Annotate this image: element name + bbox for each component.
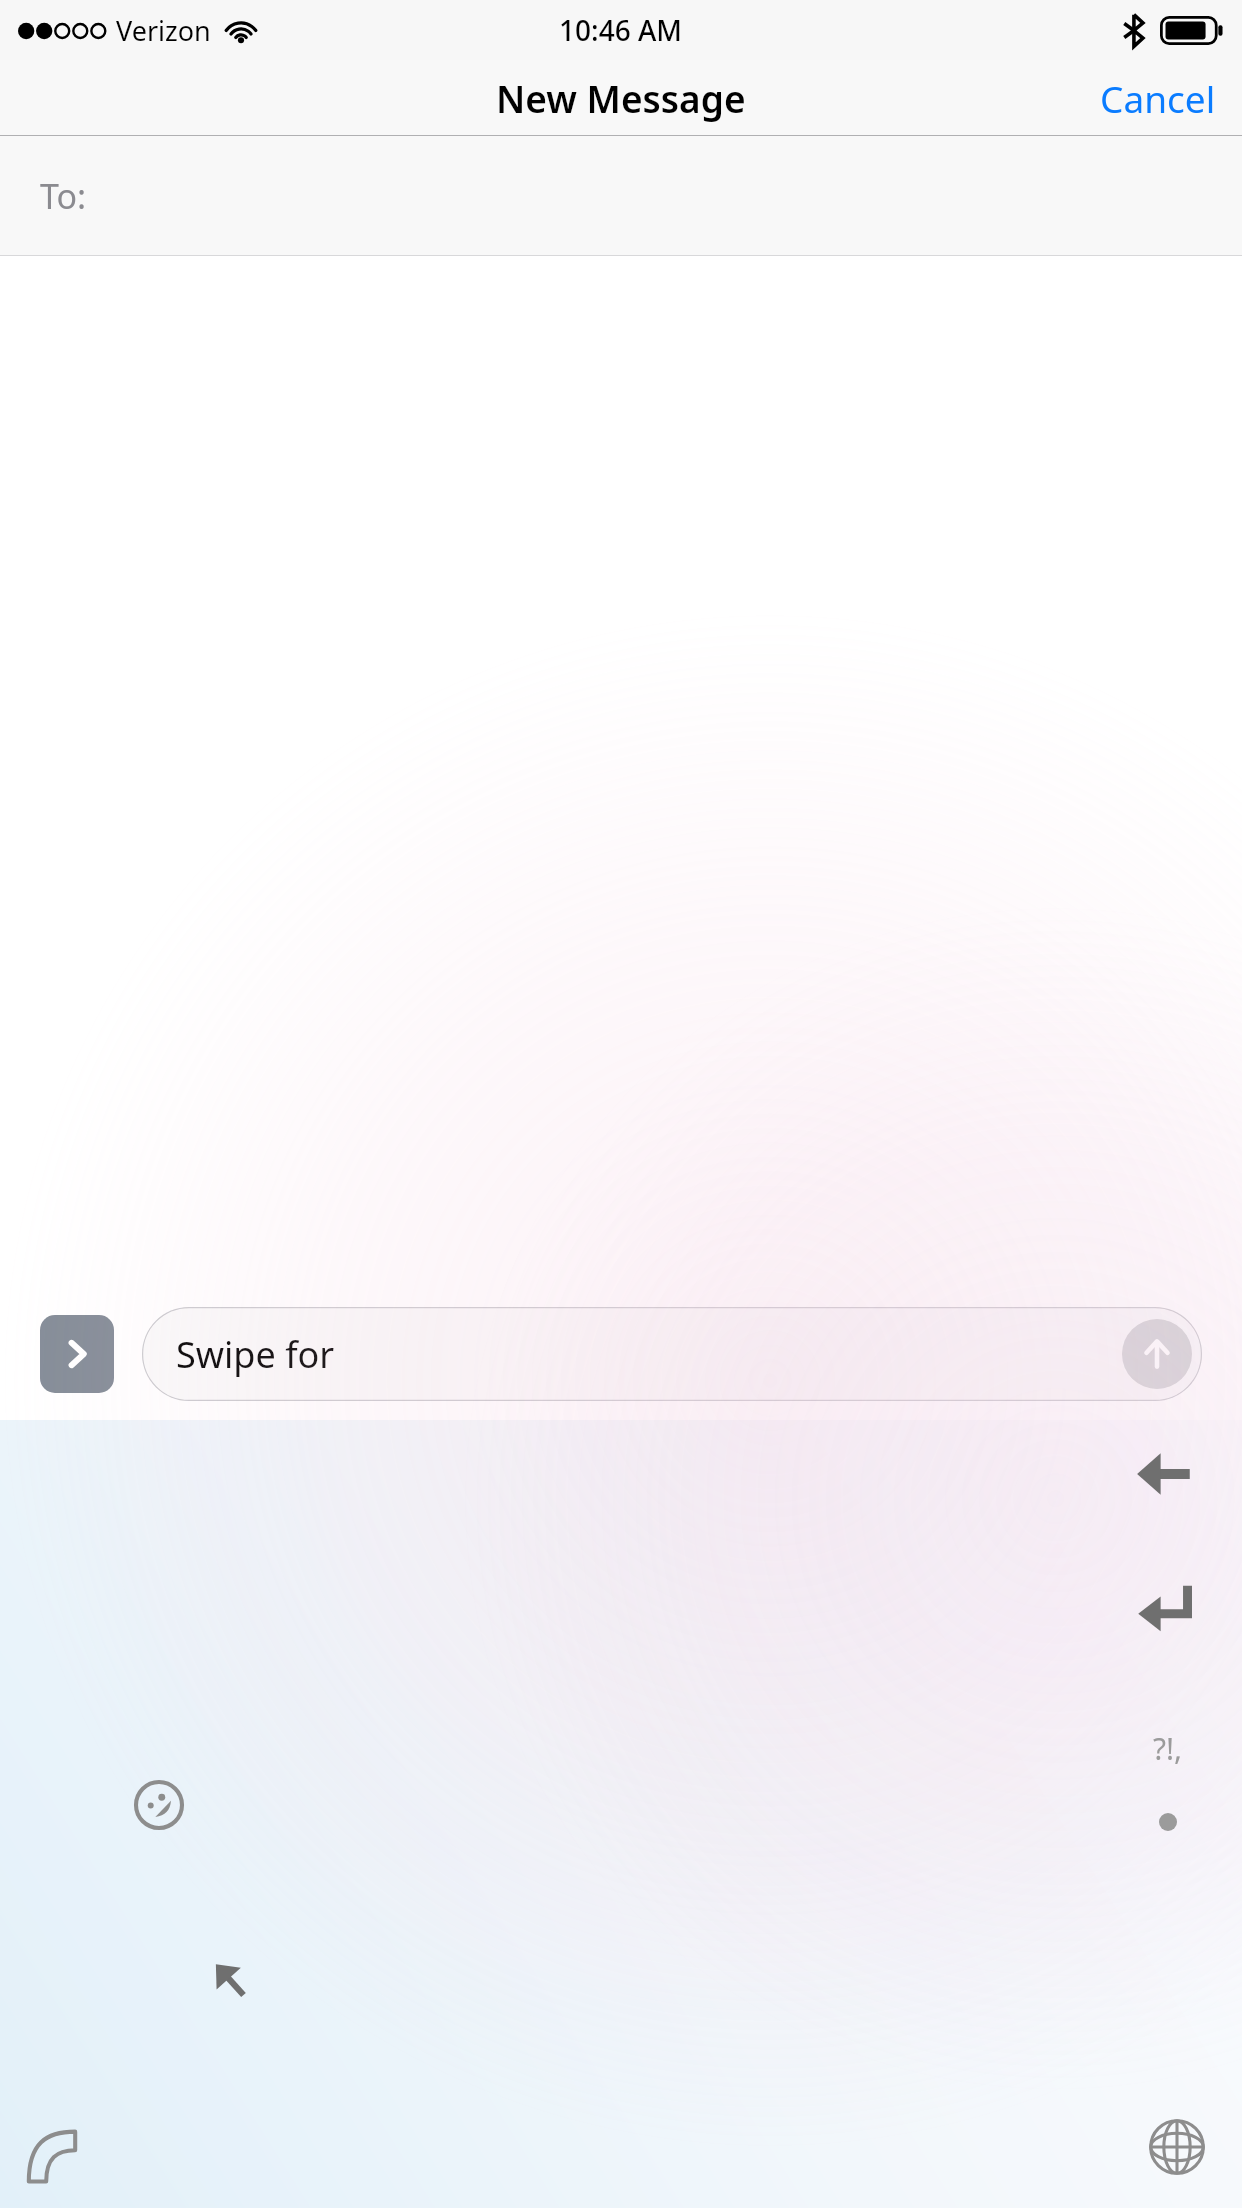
staticText: To: xyxy=(40,173,87,219)
button[interactable]: q xyxy=(0,1420,1242,2208)
button[interactable]: Send xyxy=(1122,1319,1192,1389)
button[interactable]: Shift xyxy=(198,1948,262,2012)
button[interactable]: Resize keyboard xyxy=(12,2116,92,2196)
staticText: ?!, xyxy=(1153,1728,1183,1769)
button[interactable]: Return xyxy=(1126,1568,1202,1644)
button[interactable]: Swipe for xyxy=(142,1307,1202,1401)
button[interactable]: Cancel xyxy=(1074,61,1242,135)
staticText: Cancel xyxy=(1100,73,1216,123)
button[interactable]: To: xyxy=(0,136,1242,256)
staticText: New Message xyxy=(496,73,746,123)
button[interactable]: Change language xyxy=(1138,2108,1216,2186)
staticText: Verizon xyxy=(116,12,211,49)
button[interactable]: ?!, xyxy=(1132,1712,1204,1784)
button[interactable]: Backspace xyxy=(1126,1436,1202,1512)
staticText: 10:46 AM xyxy=(559,11,683,49)
button[interactable]: Expand xyxy=(40,1315,114,1393)
button[interactable]: Period xyxy=(1132,1786,1204,1858)
button[interactable]: Emoji xyxy=(126,1772,192,1838)
staticText: Swipe for xyxy=(176,1330,335,1379)
